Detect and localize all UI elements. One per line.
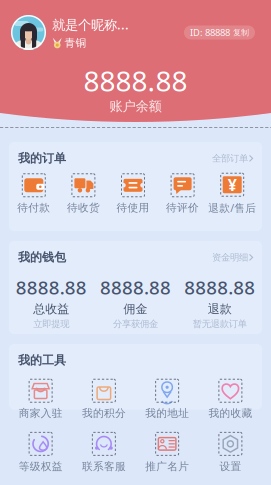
staticText: 我的积分 (82, 407, 126, 420)
staticText: 全部订单 (212, 153, 248, 164)
staticText: ID: 88888 (190, 26, 230, 39)
button[interactable]: 全部订单 (212, 153, 253, 164)
button[interactable]: 待使用 (108, 173, 158, 214)
staticText: 青铜 (64, 36, 86, 49)
staticText: 8888.88 (83, 62, 187, 99)
staticText: 立即提现 (33, 318, 69, 330)
button[interactable]: 8888.88 (178, 275, 262, 330)
staticText: 我的收藏 (208, 407, 252, 420)
staticText: 我的地址 (145, 407, 189, 420)
staticText: 等级权益 (19, 460, 63, 473)
staticText: 退款 (208, 301, 232, 316)
staticText: 设置 (219, 460, 241, 473)
staticText: 账户余额 (109, 98, 161, 115)
staticText: 8888.88 (184, 275, 255, 299)
staticText: 我的工具 (18, 353, 66, 368)
staticText: 8888.88 (16, 275, 87, 299)
staticText: 总收益 (33, 301, 69, 316)
button[interactable]: ¥ (207, 173, 257, 215)
button[interactable]: 8888.88 (9, 275, 93, 330)
staticText: 我的钱包 (18, 250, 66, 265)
staticText: 资金明细 (212, 252, 248, 263)
staticText: 待收货 (67, 201, 100, 214)
staticText: 我的订单 (18, 151, 66, 166)
button[interactable]: 待收货 (59, 173, 108, 214)
staticText: 复制 (233, 28, 249, 37)
staticText: 佣金 (123, 301, 147, 316)
staticText: 联系客服 (82, 460, 126, 473)
button[interactable]: 设置 (199, 432, 262, 473)
button[interactable]: ID: 88888 (184, 25, 260, 39)
button[interactable]: 推广名片 (135, 432, 199, 473)
button[interactable]: 8888.88 (93, 275, 178, 330)
button[interactable]: 待评价 (158, 173, 207, 214)
staticText: 待使用 (116, 201, 149, 214)
staticText: 待付款 (17, 201, 50, 214)
staticText: 暂无退款订单 (193, 318, 247, 330)
button[interactable]: 联系客服 (72, 432, 135, 473)
button[interactable]: 待付款 (9, 173, 59, 214)
button[interactable]: 商家入驻 (9, 379, 72, 420)
staticText: 分享获佣金 (113, 318, 158, 330)
button[interactable]: 我的积分 (72, 379, 135, 420)
staticText: 退款/售后 (208, 201, 256, 215)
staticText: 就是个昵称... (52, 16, 129, 33)
staticText: 待评价 (166, 201, 199, 214)
button[interactable]: 我的地址 (135, 379, 199, 420)
staticText: ¥ (228, 174, 237, 195)
staticText: 推广名片 (145, 460, 189, 473)
button[interactable]: 资金明细 (212, 252, 253, 263)
button[interactable]: 等级权益 (9, 432, 72, 473)
button[interactable]: 我的收藏 (199, 379, 262, 420)
staticText: 8888.88 (100, 275, 171, 299)
staticText: 商家入驻 (19, 407, 63, 420)
